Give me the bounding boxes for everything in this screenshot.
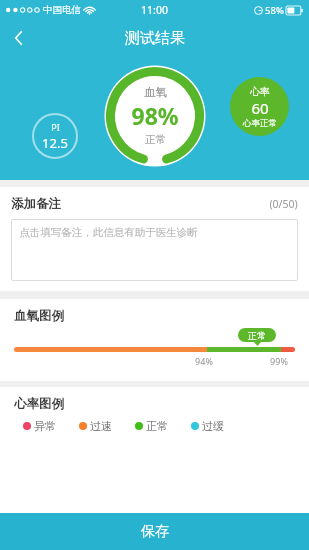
staticText: 过缓 xyxy=(202,419,224,433)
staticText: 测试结果 xyxy=(125,29,185,48)
staticText: 中国电信 xyxy=(43,4,81,16)
staticText: 添加备注 xyxy=(11,196,61,212)
button[interactable]: Back xyxy=(0,20,36,56)
staticText: 60 xyxy=(251,98,269,118)
staticText: 94% xyxy=(195,355,213,367)
staticText: 11:00 xyxy=(141,3,168,17)
staticText: 血氧图例 xyxy=(14,308,64,324)
staticText: 98% xyxy=(131,100,179,131)
staticText: 12.5 xyxy=(42,134,68,152)
staticText: 正常 xyxy=(146,419,168,433)
staticText: 99% xyxy=(270,355,288,367)
staticText: 正常 xyxy=(248,330,266,341)
staticText: 保存 xyxy=(141,523,169,541)
staticText: 心率图例 xyxy=(14,396,64,412)
staticText: (0/50) xyxy=(269,197,298,211)
staticText: PI xyxy=(51,121,60,133)
staticText: 正常 xyxy=(145,133,166,146)
staticText: 过速 xyxy=(90,419,112,433)
staticText: 血氧 xyxy=(144,85,167,99)
staticText: 58% xyxy=(265,4,284,17)
staticText: 异常 xyxy=(34,419,56,433)
button[interactable]: 保存 xyxy=(0,513,309,550)
staticText: 心率正常 xyxy=(243,118,277,129)
staticText: 心率 xyxy=(250,85,270,98)
button[interactable]: 点击填写备注，此信息有助于医生诊断 xyxy=(11,219,298,281)
staticText: 点击填写备注，此信息有助于医生诊断 xyxy=(19,226,198,239)
